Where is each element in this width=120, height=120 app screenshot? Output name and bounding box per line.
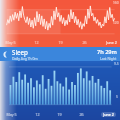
staticText: 19 bbox=[58, 40, 63, 45]
staticText: May 5 bbox=[5, 40, 16, 45]
staticText: June 2 bbox=[103, 112, 114, 117]
other: Sleep bbox=[3, 51, 10, 58]
staticText: Last Night bbox=[100, 56, 117, 61]
staticText: 160 bbox=[113, 1, 119, 5]
staticText: 7h 29m bbox=[97, 48, 117, 56]
button[interactable]: 9.5 bbox=[0, 61, 120, 120]
staticText: Sleep bbox=[12, 48, 28, 56]
staticText: 12 bbox=[34, 40, 39, 45]
staticText: May 5 bbox=[6, 112, 17, 117]
staticText: 12 bbox=[35, 112, 40, 117]
staticText: June 2 bbox=[106, 40, 117, 45]
button[interactable]: 160 bbox=[0, 0, 120, 47]
button[interactable]: June 2 bbox=[103, 112, 114, 117]
staticText: 26 bbox=[82, 40, 87, 45]
staticText: 5 bbox=[116, 95, 118, 99]
staticText: 120 bbox=[113, 21, 119, 25]
staticText: 26 bbox=[79, 112, 84, 117]
staticText: 9.5 bbox=[114, 62, 119, 66]
button[interactable]: Sleep bbox=[0, 47, 120, 61]
staticText: 19 bbox=[57, 112, 62, 117]
staticText: Daily Avg 7h 0m bbox=[12, 56, 38, 61]
